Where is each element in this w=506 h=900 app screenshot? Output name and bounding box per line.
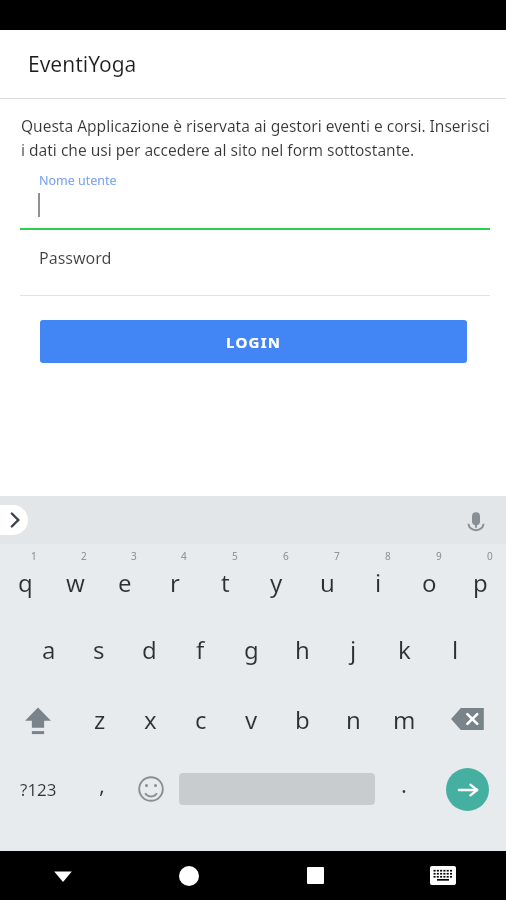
staticText: x [144,703,157,736]
staticText: EventiYoga [28,50,137,79]
button[interactable]: Enter [428,754,506,824]
staticText: i [375,566,382,599]
button[interactable]: Backspace [430,684,506,754]
staticText: m [393,703,416,736]
button[interactable]: Password [0,239,506,296]
button[interactable]: 5 [200,544,251,614]
button[interactable]: Nome utente [0,172,506,230]
button[interactable]: s [74,614,124,684]
staticText: LOGIN [226,332,282,352]
button[interactable]: v [226,684,277,754]
staticText: Password [39,247,112,269]
button[interactable]: m [379,684,430,754]
button[interactable]: Voice input [462,506,490,534]
staticText: t [221,566,230,599]
staticText: , [99,769,105,799]
staticText: z [94,703,106,736]
button[interactable]: 3 [100,544,150,614]
button[interactable]: 0 [455,544,506,614]
staticText: 6 [283,549,289,563]
staticText: ?123 [20,778,57,801]
staticText: 4 [181,549,187,563]
staticText: Questa Applicazione è riservata ai gesto… [21,115,492,160]
staticText: . [401,769,407,799]
button[interactable]: EventiYoga [0,30,506,98]
button[interactable]: h [277,614,328,684]
button[interactable]: Space [175,754,379,824]
staticText: Nome utente [39,172,117,189]
staticText: p [473,566,488,599]
staticText: k [398,633,411,666]
staticText: n [346,703,361,736]
button[interactable]: Home [126,851,252,900]
staticText: 5 [232,549,238,563]
staticText: l [452,633,459,666]
staticText: j [350,633,357,666]
button[interactable]: LOGIN [40,320,467,363]
staticText: u [320,566,335,599]
button[interactable]: 4 [150,544,200,614]
button[interactable]: 8 [353,544,404,614]
staticText: v [245,703,258,736]
button[interactable]: Recents [252,851,379,900]
staticText: d [142,633,157,666]
staticText: 7 [334,549,340,563]
staticText: 9 [436,549,442,563]
staticText: w [66,566,85,599]
staticText: r [170,566,180,599]
staticText: 2 [81,549,87,563]
button[interactable]: , [77,754,126,824]
button[interactable]: Expand suggestions [0,505,28,535]
button[interactable]: Emoji [126,754,175,824]
button[interactable]: Back [0,851,126,900]
button[interactable]: 9 [404,544,455,614]
button[interactable]: 1 [0,544,50,614]
staticText: 8 [385,549,391,563]
staticText: q [18,566,33,599]
staticText: h [295,633,310,666]
button[interactable]: a [24,614,74,684]
button[interactable]: f [175,614,226,684]
staticText: c [195,703,207,736]
button[interactable]: l [430,614,481,684]
button[interactable]: 7 [302,544,353,614]
button[interactable]: ?123 [0,754,77,824]
staticText: 0 [487,549,493,563]
button[interactable]: 2 [50,544,100,614]
staticText: 3 [131,549,137,563]
staticText: 1 [31,549,37,563]
button[interactable]: d [124,614,175,684]
button[interactable]: n [328,684,379,754]
staticText: e [118,566,132,599]
button[interactable]: b [277,684,328,754]
staticText: b [295,703,310,736]
button[interactable]: c [175,684,226,754]
button[interactable]: Shift [0,684,75,754]
staticText: a [42,633,56,666]
button[interactable]: . [379,754,428,824]
staticText: f [196,633,205,666]
staticText: s [93,633,105,666]
staticText: y [270,566,283,599]
button[interactable]: k [379,614,430,684]
staticText: o [422,566,437,599]
button[interactable]: x [125,684,175,754]
button[interactable]: 6 [251,544,302,614]
button[interactable]: Switch keyboard [379,851,506,900]
button[interactable]: z [75,684,125,754]
button[interactable]: g [226,614,277,684]
staticText: g [244,633,259,666]
button[interactable]: j [328,614,379,684]
